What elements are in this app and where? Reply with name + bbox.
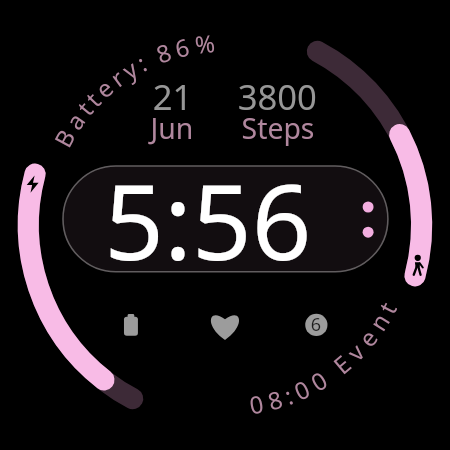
button[interactable]: Watch face: 5:56, 21 Jun, 3800 steps, ba…	[0, 0, 450, 450]
